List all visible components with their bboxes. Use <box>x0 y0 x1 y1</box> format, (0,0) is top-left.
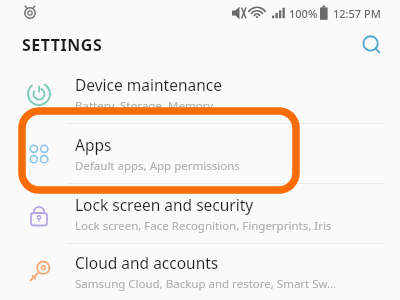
staticText: Samsung Cloud, Backup and restore, Smart… <box>75 276 337 292</box>
staticText: Device maintenance <box>75 74 222 95</box>
staticText: Lock screen, Face Recognition, Fingerpri… <box>75 218 332 234</box>
staticText: 12:57 PM <box>333 6 381 21</box>
button[interactable]: Apps <box>0 124 400 183</box>
staticText: Lock screen and security <box>75 194 254 215</box>
button[interactable]: Search <box>352 26 392 64</box>
staticText: 100% <box>289 6 318 21</box>
staticText: Battery, Storage, Memory <box>75 98 214 114</box>
button[interactable]: Device maintenance <box>0 64 400 123</box>
button[interactable]: Cloud and accounts <box>0 244 400 300</box>
button[interactable]: Lock screen and security <box>0 184 400 243</box>
staticText: Default apps, App permissions <box>75 158 240 174</box>
staticText: Cloud and accounts <box>75 252 219 273</box>
staticText: Apps <box>75 134 112 155</box>
staticText: SETTINGS <box>22 34 103 56</box>
